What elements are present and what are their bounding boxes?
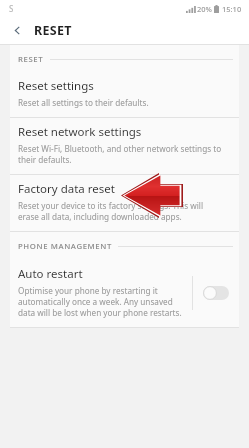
staticText: Reset network settings [18,124,142,140]
staticText: Reset your device to its factory setting… [18,200,225,222]
staticText: PHONE MANAGEMENT [18,241,112,252]
staticText: Reset Wi-Fi, Bluetooth, and other networ… [18,143,225,165]
button[interactable]: Reset settings [10,72,239,117]
staticText: Optimise your phone by restarting it aut… [18,285,188,318]
staticText: 15:10 [222,4,242,14]
button[interactable]: Back [0,17,34,44]
staticText: Reset settings [18,78,94,94]
button[interactable]: Reset network settings [10,118,239,174]
staticText: Auto restart [18,266,83,282]
staticText: Factory data reset [18,181,115,197]
button[interactable]: Auto restart [10,259,239,327]
staticText: RESET [34,22,72,39]
staticText: 20% [197,4,212,14]
button[interactable]: Factory data reset [10,175,239,231]
staticText: RESET [18,54,44,65]
staticText: S [9,3,14,14]
staticText: Reset all settings to their defaults. [18,97,149,108]
button[interactable]: Auto restart toggle [193,273,239,313]
